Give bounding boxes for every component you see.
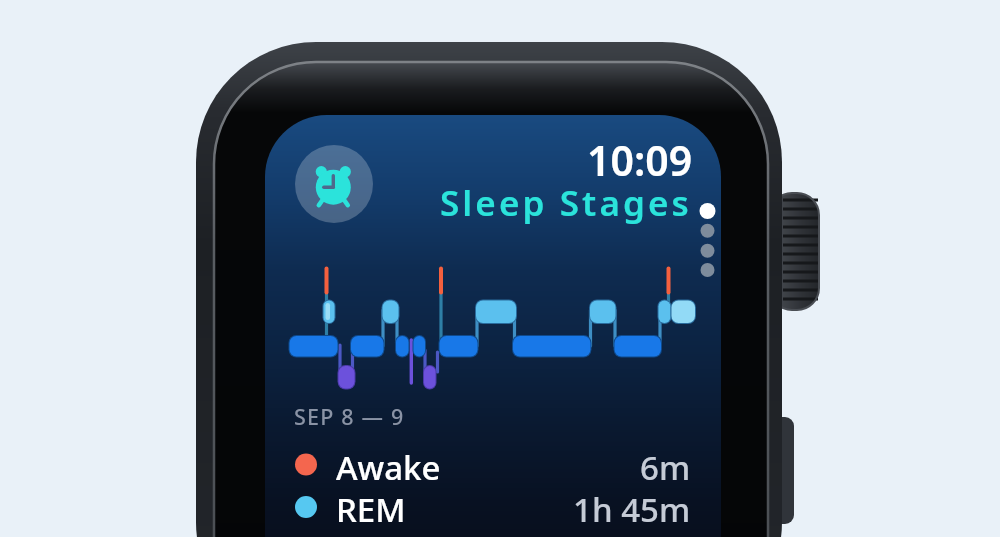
- staticText: Awake: [336, 445, 441, 483]
- staticText: Sleep Stages: [440, 179, 692, 227]
- staticText: 6m: [640, 445, 691, 483]
- button[interactable]: [285, 263, 701, 395]
- staticText: 1h 45m: [573, 487, 691, 525]
- button[interactable]: REM: [283, 487, 693, 525]
- staticText: REM: [336, 487, 406, 525]
- staticText: SEP 8 — 9: [294, 402, 405, 431]
- button[interactable]: [295, 145, 373, 223]
- button[interactable]: Awake: [283, 445, 693, 483]
- staticText: 10:09: [587, 132, 693, 188]
